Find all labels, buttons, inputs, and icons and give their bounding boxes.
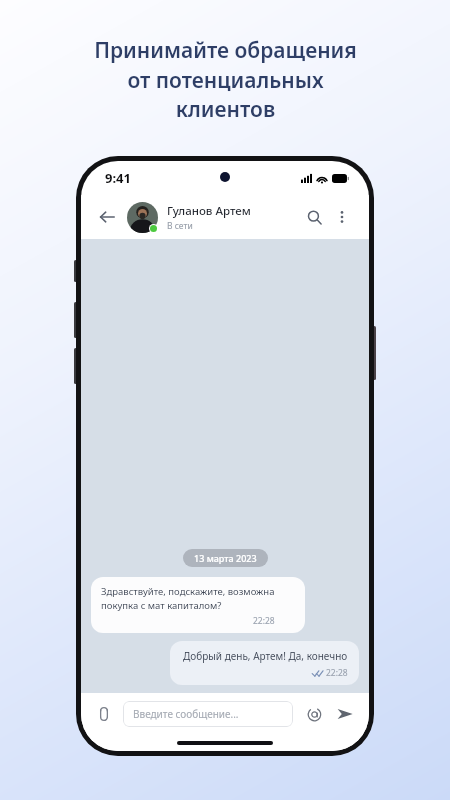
button[interactable]: Mention xyxy=(301,701,327,727)
staticText: Добрый день, Артем! Да, конечно xyxy=(183,649,348,663)
staticText: Введите сообщение... xyxy=(133,707,239,721)
button[interactable]: Гуланов Артем xyxy=(127,202,299,233)
staticText: 13 марта 2023 xyxy=(194,552,257,564)
staticText: Принимайте обращения от потенциальных кл… xyxy=(94,36,357,123)
staticText: 22:28 xyxy=(253,615,275,627)
staticText: В сети xyxy=(167,220,193,232)
staticText: Здравствуйте, подскажите, возможна покуп… xyxy=(101,585,275,612)
staticText: 22:28 xyxy=(326,667,348,679)
staticText: 9:41 xyxy=(105,169,131,187)
button[interactable]: Здравствуйте, подскажите, возможна покуп… xyxy=(91,577,305,633)
button[interactable]: Send xyxy=(331,700,359,728)
button[interactable]: Добрый день, Артем! Да, конечно xyxy=(170,641,359,685)
button[interactable]: 13 марта 2023 xyxy=(194,552,257,564)
button[interactable]: Введите сообщение... xyxy=(123,701,293,727)
button[interactable]: Back xyxy=(91,201,123,233)
button[interactable]: Attach file xyxy=(91,701,117,727)
staticText: Гуланов Артем xyxy=(167,203,251,219)
button[interactable]: Search xyxy=(299,202,329,232)
button[interactable]: More options xyxy=(329,204,355,230)
